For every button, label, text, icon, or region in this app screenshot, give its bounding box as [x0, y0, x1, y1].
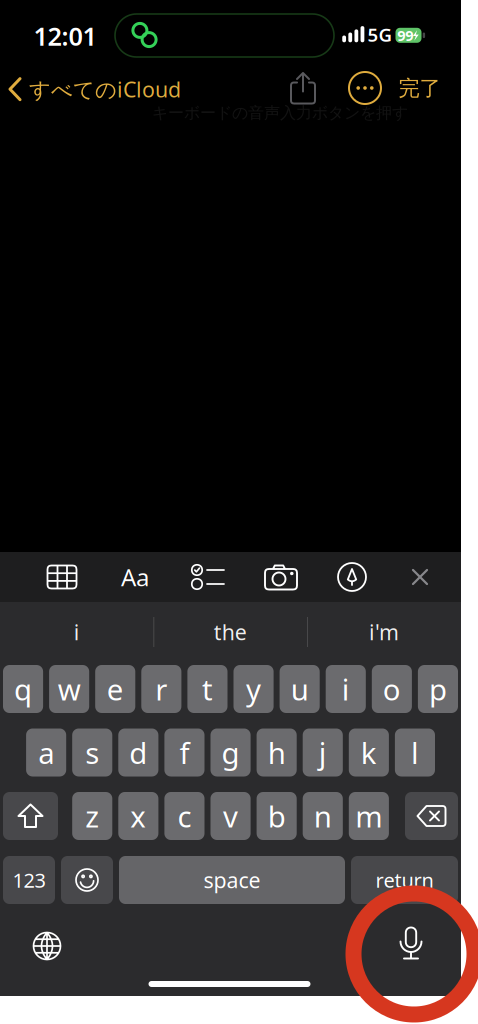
button[interactable]: r — [141, 665, 181, 713]
button[interactable]: l — [395, 728, 435, 776]
staticText: a — [38, 733, 54, 772]
button[interactable]: k — [349, 728, 389, 776]
staticText: o — [383, 669, 401, 708]
button[interactable]: i — [7, 610, 147, 654]
staticText: g — [222, 733, 240, 772]
button[interactable]: h — [257, 728, 297, 776]
staticText: y — [246, 669, 261, 708]
staticText: m — [355, 796, 382, 835]
button[interactable]: i — [326, 665, 366, 713]
staticText: n — [314, 796, 332, 835]
staticText: すべてのiCloud — [29, 75, 181, 103]
button[interactable]: the — [160, 610, 300, 654]
staticText: u — [291, 669, 309, 708]
staticText: p — [429, 669, 447, 708]
staticText: i — [74, 618, 80, 646]
button[interactable]: Dictation — [398, 925, 424, 967]
button[interactable]: c — [164, 792, 204, 840]
button[interactable]: b — [257, 792, 297, 840]
button[interactable]: Checklist — [191, 563, 225, 590]
button[interactable]: Markup — [337, 562, 367, 592]
button[interactable]: m — [349, 792, 389, 840]
button[interactable]: More — [348, 71, 382, 105]
button[interactable]: space — [119, 856, 345, 904]
staticText: z — [85, 796, 99, 835]
button[interactable]: Insert Table — [46, 564, 77, 589]
button[interactable]: Next Keyboard — [32, 931, 62, 961]
staticText: i — [342, 669, 350, 708]
staticText: k — [361, 733, 377, 772]
staticText: x — [130, 796, 146, 835]
button[interactable]: t — [187, 665, 227, 713]
staticText: e — [107, 669, 124, 708]
staticText: h — [268, 733, 286, 772]
button[interactable]: Back — [8, 75, 181, 103]
staticText: 99 — [397, 26, 413, 45]
staticText: q — [14, 669, 32, 708]
button[interactable]: s — [72, 728, 112, 776]
staticText: space — [203, 866, 260, 894]
button[interactable]: z — [72, 792, 112, 840]
staticText: r — [155, 669, 167, 708]
button[interactable]: n — [303, 792, 343, 840]
button[interactable]: Format — [121, 561, 149, 593]
staticText: d — [129, 733, 147, 772]
button[interactable]: a — [26, 728, 66, 776]
button[interactable]: Live Activity — [115, 14, 334, 57]
staticText: b — [268, 796, 286, 835]
staticText: return — [375, 867, 433, 893]
button[interactable]: e — [95, 665, 135, 713]
button[interactable]: p — [418, 665, 458, 713]
button[interactable]: u — [280, 665, 320, 713]
staticText: c — [177, 796, 191, 835]
button[interactable]: return — [351, 856, 458, 904]
button[interactable]: v — [210, 792, 251, 840]
button[interactable]: Camera — [264, 563, 298, 590]
staticText: s — [85, 733, 99, 772]
staticText: t — [202, 669, 213, 708]
staticText: 完了 — [398, 75, 440, 102]
button[interactable]: f — [164, 728, 204, 776]
staticText: j — [319, 733, 327, 772]
button[interactable]: o — [372, 665, 412, 713]
button[interactable]: Delete — [405, 792, 458, 840]
staticText: 5G — [367, 22, 392, 47]
staticText: f — [179, 733, 189, 772]
staticText: w — [58, 669, 81, 708]
staticText: Aa — [121, 561, 149, 593]
staticText: 123 — [12, 867, 45, 893]
button[interactable]: w — [49, 665, 89, 713]
button[interactable]: Shift — [3, 792, 58, 840]
button[interactable]: 123 — [3, 856, 55, 904]
staticText: キーボードの音声入力ボタンを押す — [152, 103, 408, 123]
button[interactable]: Emoji — [61, 856, 113, 904]
button[interactable]: Share — [290, 71, 316, 104]
staticText: i'm — [369, 618, 399, 646]
button[interactable]: Dismiss Keyboard — [412, 569, 428, 585]
staticText: 12:01 — [33, 19, 96, 53]
button[interactable]: j — [303, 728, 343, 776]
button[interactable]: y — [233, 665, 274, 713]
button[interactable]: q — [3, 665, 43, 713]
button[interactable]: g — [210, 728, 251, 776]
button[interactable]: x — [118, 792, 158, 840]
staticText: l — [411, 733, 419, 772]
button[interactable]: d — [118, 728, 158, 776]
staticText: the — [214, 618, 247, 646]
button[interactable]: 完了 — [398, 75, 440, 102]
staticText: v — [223, 796, 238, 835]
button[interactable]: i'm — [314, 610, 454, 654]
